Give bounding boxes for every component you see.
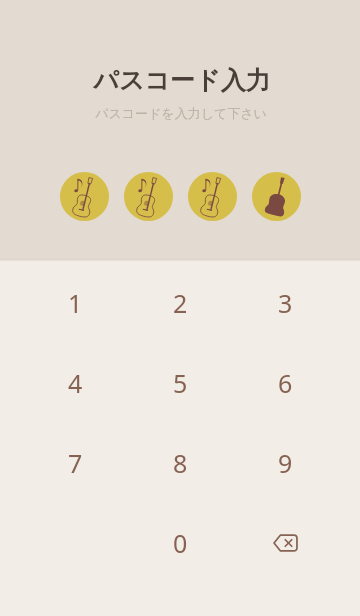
staticText: 8 xyxy=(173,446,188,480)
button[interactable]: 3 xyxy=(233,263,338,343)
button[interactable]: 8 xyxy=(128,423,233,503)
button[interactable]: 5 xyxy=(128,343,233,423)
staticText: 2 xyxy=(173,286,188,320)
staticText: 3 xyxy=(278,286,293,320)
button[interactable]: 2 xyxy=(128,263,233,343)
button[interactable]: 7 xyxy=(23,423,128,503)
button[interactable]: 9 xyxy=(233,423,338,503)
staticText: 6 xyxy=(278,366,293,400)
button[interactable]: 0 xyxy=(128,503,233,583)
staticText: 1 xyxy=(68,286,83,320)
staticText: 9 xyxy=(278,446,293,480)
button[interactable]: 4 xyxy=(23,343,128,423)
staticText: パスコードを入力して下さい xyxy=(95,105,267,121)
staticText: パスコード入力 xyxy=(93,65,271,96)
staticText: 0 xyxy=(173,526,188,560)
button[interactable]: 1 xyxy=(23,263,128,343)
button[interactable]: 6 xyxy=(233,343,338,423)
staticText: 4 xyxy=(68,366,83,400)
staticText: 5 xyxy=(173,366,188,400)
button[interactable]: Backspace xyxy=(233,503,338,583)
staticText: 7 xyxy=(68,446,83,480)
